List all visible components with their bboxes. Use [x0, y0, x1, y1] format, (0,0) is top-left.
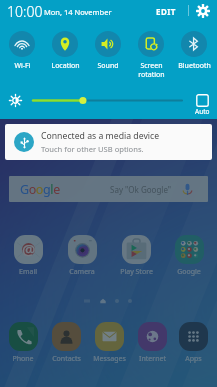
button[interactable]: Internet — [132, 322, 172, 364]
button[interactable]: @ — [8, 235, 48, 277]
staticText: Location — [51, 61, 80, 71]
staticText: Apps — [185, 354, 202, 364]
staticText: Connected as a media device — [41, 130, 160, 142]
button[interactable]: Auto — [189, 94, 215, 116]
button[interactable]: Play Store — [116, 235, 156, 277]
button[interactable]: Bluetooth — [172, 31, 216, 71]
staticText: Contacts — [52, 354, 81, 364]
button[interactable]: Wi-Fi — [0, 31, 44, 71]
button[interactable]: Google — [9, 176, 208, 202]
button[interactable]: Location — [43, 31, 87, 71]
staticText: 10:00 — [7, 2, 43, 21]
button[interactable]: Sound — [86, 31, 130, 71]
button[interactable]: Contacts — [46, 322, 86, 364]
staticText: Internet — [139, 354, 166, 364]
staticText: Email — [19, 267, 37, 277]
button[interactable]: Settings — [195, 3, 210, 18]
staticText: Wi-Fi — [14, 61, 31, 71]
button[interactable]: Connected as a media device — [5, 124, 212, 160]
staticText: Mon, 14 November — [44, 7, 112, 17]
staticText: Touch for other USB options. — [41, 144, 144, 154]
staticText: Say "Ok Google" — [110, 184, 172, 195]
staticText: Google — [177, 267, 201, 277]
staticText: Phone — [12, 354, 34, 364]
staticText: Google — [20, 181, 60, 198]
button[interactable]: Screen rotation — [129, 31, 173, 79]
button[interactable]: Home screen settings — [84, 298, 90, 304]
button[interactable]: EDIT — [152, 2, 180, 20]
button[interactable]: Brightness — [30, 93, 185, 108]
button[interactable]: Camera — [62, 235, 102, 277]
button[interactable]: Google — [169, 235, 209, 277]
button[interactable]: Apps — [173, 322, 213, 364]
staticText: Bluetooth — [178, 61, 211, 71]
staticText: Sound — [97, 61, 119, 71]
staticText: Messages — [93, 354, 126, 364]
staticText: Screen rotation — [138, 61, 165, 79]
staticText: @ — [22, 239, 36, 259]
button[interactable]: Phone — [3, 322, 43, 364]
staticText: Auto — [195, 107, 210, 116]
staticText: Camera — [69, 267, 95, 277]
button[interactable]: Messages — [89, 322, 129, 364]
staticText: EDIT — [156, 6, 176, 17]
staticText: Play Store — [120, 267, 153, 277]
